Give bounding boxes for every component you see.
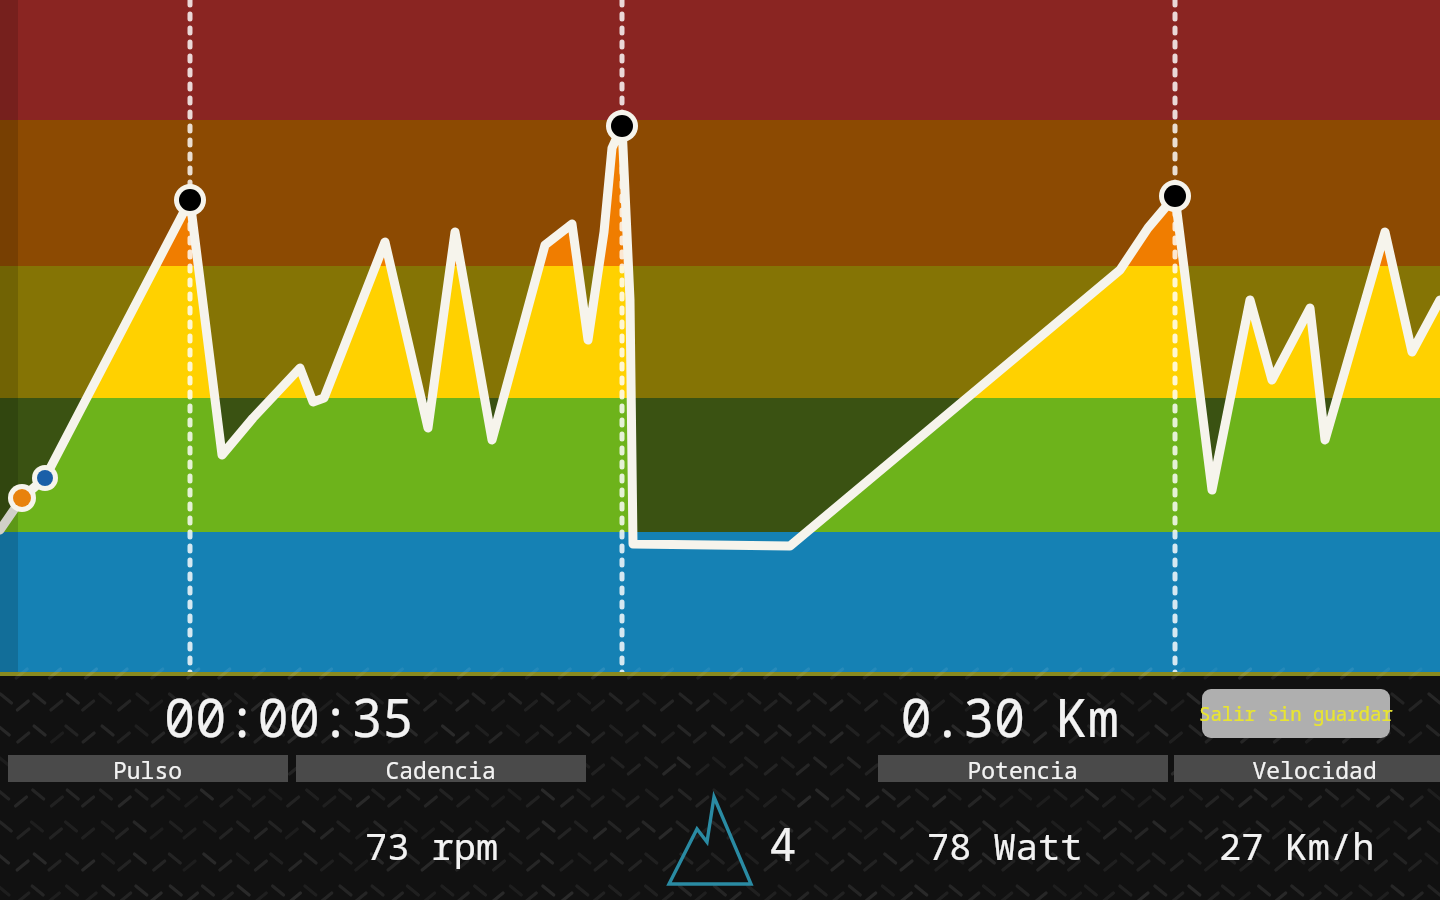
button[interactable]: Cadencia bbox=[296, 755, 586, 782]
button[interactable]: Pulso bbox=[8, 755, 288, 782]
button[interactable]: Elevation profile bbox=[660, 790, 850, 890]
button[interactable]: Potencia bbox=[878, 755, 1168, 782]
button[interactable]: Velocidad bbox=[1174, 755, 1440, 782]
button[interactable]: Salir sin guardar bbox=[1202, 689, 1390, 738]
